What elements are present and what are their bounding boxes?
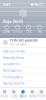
- staticText: Historial clinico: [3, 56, 24, 60]
- staticText: Ayuda y soporte: [3, 82, 25, 85]
- button[interactable]: Ayuda y soporte: [0, 80, 46, 86]
- staticText: Salud: [19, 94, 26, 98]
- staticText: Llamar: [3, 30, 10, 33]
- staticText: Citas: [11, 94, 17, 98]
- button[interactable]: Correo: [12, 25, 23, 33]
- staticText: Notificaciones: [3, 69, 22, 72]
- button[interactable]: Notas: [28, 88, 37, 100]
- staticText: Ver detalles: [10, 43, 27, 46]
- staticText: Mas: [37, 30, 41, 33]
- button[interactable]: Llamar: [1, 25, 12, 33]
- staticText: Documentos: [3, 62, 20, 66]
- button[interactable]: Inicio: [0, 88, 9, 100]
- staticText: 9:41: [3, 2, 10, 7]
- staticText: Correo: [12, 30, 22, 33]
- staticText: Datos personales: [3, 50, 26, 53]
- button[interactable]: Salud: [18, 88, 28, 100]
- button[interactable]: Mas: [34, 25, 45, 33]
- button[interactable]: Datos personales: [0, 48, 46, 54]
- button[interactable]: Notificaciones: [0, 68, 46, 74]
- staticText: Configuracion: [3, 75, 23, 79]
- button[interactable]: Documentos: [0, 61, 46, 67]
- staticText: Notas: [29, 94, 36, 98]
- button[interactable]: Historial clinico: [0, 55, 46, 61]
- button[interactable]: Perfil: [37, 88, 46, 100]
- staticText: Chat: [25, 30, 31, 33]
- staticText: Perfil: [37, 94, 45, 98]
- staticText: Bajo Perfil: [3, 18, 23, 24]
- button[interactable]: Citas: [9, 88, 18, 100]
- staticText: Inicio: [1, 94, 9, 98]
- button[interactable]: Chat: [23, 25, 34, 33]
- button[interactable]: Perfil del paciente: [0, 38, 46, 47]
- button[interactable]: Configuracion: [0, 74, 46, 80]
- staticText: Perfil del paciente: [10, 39, 38, 42]
